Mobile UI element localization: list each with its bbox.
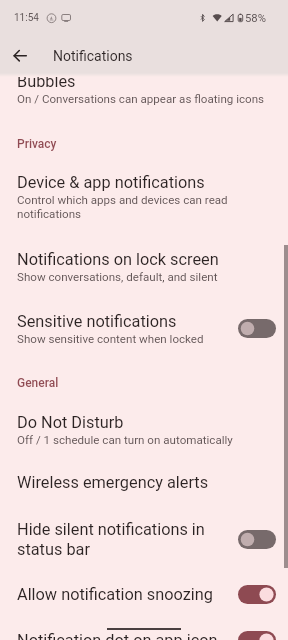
staticText: Device & app notifications xyxy=(17,172,205,192)
button[interactable]: Back xyxy=(8,44,32,68)
staticText: Control which apps and devices can read … xyxy=(17,193,276,221)
staticText: General xyxy=(17,376,59,390)
button[interactable]: Do Not Disturb xyxy=(0,401,288,458)
staticText: Do Not Disturb xyxy=(17,412,124,432)
button[interactable]: Hide silent notifications in status bar xyxy=(0,509,288,569)
button[interactable]: Wireless emergency alerts xyxy=(0,462,288,502)
staticText: Hide silent notifications in status bar xyxy=(17,519,230,559)
staticText: Show conversations, default, and silent xyxy=(17,270,218,284)
staticText: Privacy xyxy=(17,137,57,151)
staticText: Allow notification snoozing xyxy=(17,584,213,604)
button[interactable]: Device & app notifications xyxy=(0,160,288,232)
staticText: Sensitive notifications xyxy=(17,311,177,331)
staticText: On / Conversations can appear as floatin… xyxy=(17,92,265,106)
button[interactable]: Sensitive notifications xyxy=(0,300,288,357)
button[interactable]: Notifications on lock screen xyxy=(0,238,288,295)
staticText: Show sensitive content when locked xyxy=(17,332,204,346)
staticText: Bubbles xyxy=(17,71,76,91)
button[interactable]: Allow notification snoozing xyxy=(0,574,288,614)
button[interactable]: Notification dot on app icon xyxy=(0,620,288,640)
staticText: Notifications on lock screen xyxy=(17,249,219,269)
button[interactable]: Bubbles xyxy=(0,60,288,117)
staticText: 11:54 xyxy=(14,12,39,24)
staticText: Off / 1 schedule can turn on automatical… xyxy=(17,433,233,447)
staticText: Notifications xyxy=(53,46,133,65)
staticText: 58% xyxy=(245,12,266,25)
staticText: Notification dot on app icon xyxy=(17,630,218,640)
staticText: Wireless emergency alerts xyxy=(17,472,209,492)
